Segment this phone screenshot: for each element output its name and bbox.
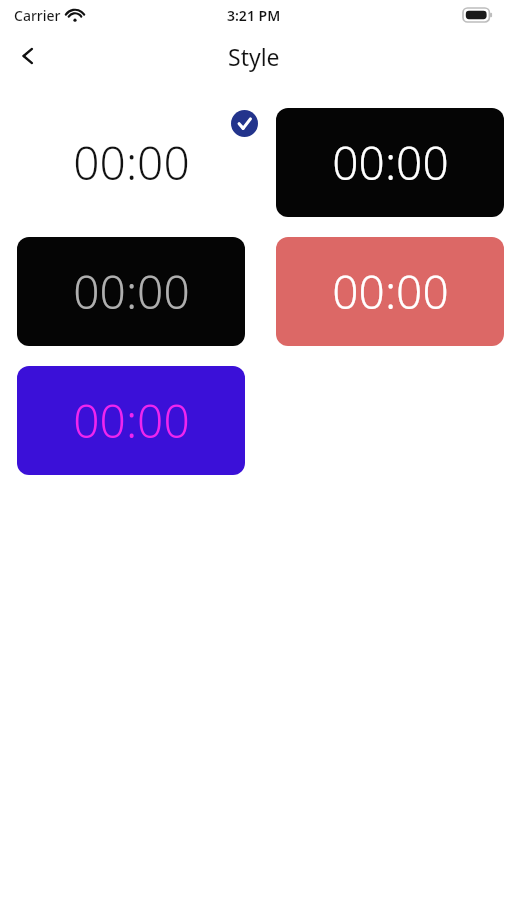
button[interactable]: 00:00 [276,237,504,346]
staticText: Carrier [14,6,61,25]
staticText: 3:21 PM [227,6,281,25]
button[interactable]: Back [6,34,50,78]
staticText: 00:00 [332,260,449,323]
staticText: Style [228,41,280,72]
button[interactable]: 00:00 [17,237,245,346]
button[interactable]: 00:00 [276,108,504,217]
staticText: 00:00 [73,260,190,323]
staticText: 00:00 [332,131,449,194]
staticText: 00:00 [73,389,190,452]
button[interactable]: 00:00 [17,108,245,217]
staticText: 00:00 [73,131,190,194]
button[interactable]: 00:00 [17,366,245,475]
